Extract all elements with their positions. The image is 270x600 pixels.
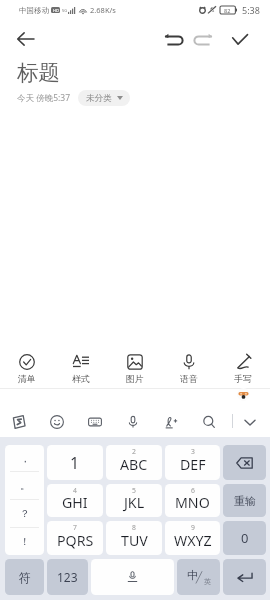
- staticText: 样式: [72, 374, 90, 385]
- button[interactable]: Assistant: [237, 388, 250, 401]
- button[interactable]: 未分类: [78, 90, 130, 106]
- staticText: 今天 傍晚5:37: [17, 92, 71, 104]
- staticText: 中: [187, 568, 198, 582]
- button[interactable]: 5: [106, 484, 162, 517]
- staticText: 符: [19, 570, 31, 585]
- staticText: 0: [241, 529, 249, 547]
- button[interactable]: 7: [47, 521, 103, 555]
- staticText: 1: [70, 452, 80, 474]
- button[interactable]: 1: [47, 445, 103, 480]
- staticText: 英: [204, 577, 211, 586]
- button[interactable]: 4: [47, 484, 103, 517]
- staticText: 5: [132, 486, 136, 495]
- staticText: 图片: [126, 374, 144, 385]
- staticText: 重输: [234, 494, 256, 508]
- button[interactable]: 3: [165, 445, 220, 480]
- button[interactable]: 手写: [216, 340, 270, 398]
- staticText: 清单: [18, 374, 36, 385]
- staticText: PQRS: [57, 531, 94, 550]
- button[interactable]: Redo: [190, 26, 217, 53]
- button[interactable]: 0: [223, 521, 266, 555]
- button[interactable]: ！: [5, 528, 44, 555]
- staticText: 手写: [234, 374, 252, 385]
- button[interactable]: 8: [106, 521, 162, 555]
- button[interactable]: 图片: [108, 340, 162, 398]
- staticText: 。: [20, 479, 30, 492]
- button[interactable]: Search: [190, 407, 228, 437]
- button[interactable]: Emoji: [38, 407, 76, 437]
- button[interactable]: Sogou: [0, 407, 38, 437]
- staticText: DEF: [180, 455, 206, 474]
- button[interactable]: Chinese English toggle: [177, 559, 220, 595]
- staticText: ？: [20, 507, 30, 520]
- button[interactable]: 语音: [162, 340, 216, 398]
- button[interactable]: 123: [47, 559, 88, 595]
- staticText: GHI: [62, 493, 88, 512]
- button[interactable]: Hide keyboard: [238, 407, 262, 437]
- staticText: 未分类: [86, 93, 112, 104]
- button[interactable]: Enter: [223, 559, 266, 595]
- button[interactable]: 2: [106, 445, 162, 480]
- button[interactable]: Keyboard layout: [76, 407, 114, 437]
- staticText: 5G: [62, 8, 68, 13]
- staticText: 6: [191, 486, 195, 495]
- button[interactable]: Space: [91, 559, 174, 595]
- staticText: 标题: [17, 59, 60, 86]
- staticText: 8: [132, 523, 136, 532]
- button[interactable]: ？: [5, 500, 44, 527]
- button[interactable]: 清单: [0, 340, 54, 398]
- button[interactable]: Backspace: [223, 445, 266, 480]
- button[interactable]: Undo: [159, 26, 186, 53]
- button[interactable]: Back: [11, 25, 39, 53]
- staticText: JKL: [124, 493, 145, 512]
- staticText: 82: [224, 7, 231, 14]
- button[interactable]: 符: [5, 559, 44, 595]
- staticText: WXYZ: [174, 531, 212, 550]
- button[interactable]: 。: [5, 472, 44, 499]
- staticText: 9: [191, 523, 195, 532]
- button[interactable]: 重输: [223, 484, 266, 517]
- staticText: ！: [20, 535, 30, 548]
- button[interactable]: 9: [165, 521, 220, 555]
- button[interactable]: Handwriting: [152, 407, 190, 437]
- staticText: 中国移动: [19, 6, 49, 15]
- staticText: 5:38: [242, 4, 260, 16]
- staticText: HD: [53, 8, 59, 13]
- staticText: 2.68K/s: [90, 5, 116, 15]
- staticText: 语音: [180, 374, 198, 385]
- button[interactable]: ，: [5, 445, 44, 471]
- staticText: 7: [73, 523, 77, 532]
- staticText: 3: [191, 447, 195, 456]
- button[interactable]: Voice input: [114, 407, 152, 437]
- button[interactable]: Save: [226, 26, 253, 53]
- staticText: ，: [20, 452, 30, 465]
- staticText: TUV: [121, 531, 148, 550]
- staticText: 4: [73, 486, 77, 495]
- button[interactable]: 6: [165, 484, 220, 517]
- staticText: ABC: [120, 455, 148, 474]
- button[interactable]: 样式: [54, 340, 108, 398]
- staticText: 2: [132, 447, 136, 456]
- staticText: MNO: [175, 493, 210, 512]
- staticText: 123: [57, 569, 78, 585]
